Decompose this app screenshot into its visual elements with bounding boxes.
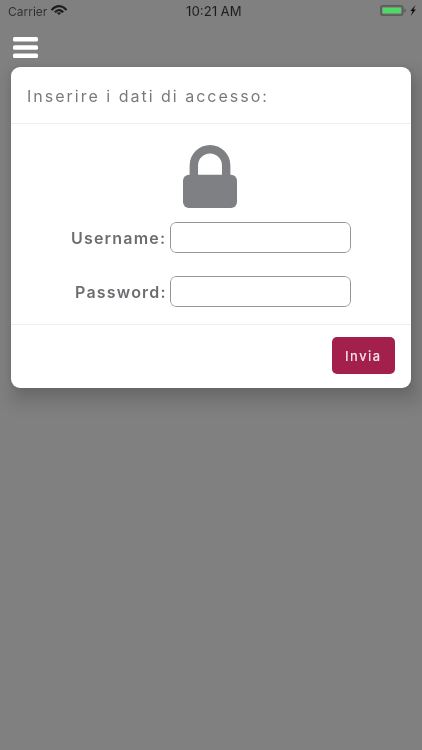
staticText: Carrier bbox=[8, 4, 48, 19]
button[interactable]: Invia bbox=[332, 337, 395, 374]
staticText: Invia bbox=[345, 348, 382, 364]
other: Wi-Fi bbox=[52, 5, 66, 15]
staticText: Username: bbox=[71, 228, 167, 247]
button[interactable]: Open navigation menu bbox=[5, 30, 46, 64]
staticText: 10:21 AM bbox=[186, 3, 242, 19]
other: Battery charging bbox=[380, 5, 407, 16]
staticText: Inserire i dati di accesso: bbox=[27, 86, 269, 105]
staticText: Password: bbox=[75, 282, 167, 301]
button[interactable]: Username: bbox=[170, 222, 351, 253]
button[interactable]: Password: bbox=[170, 276, 351, 307]
